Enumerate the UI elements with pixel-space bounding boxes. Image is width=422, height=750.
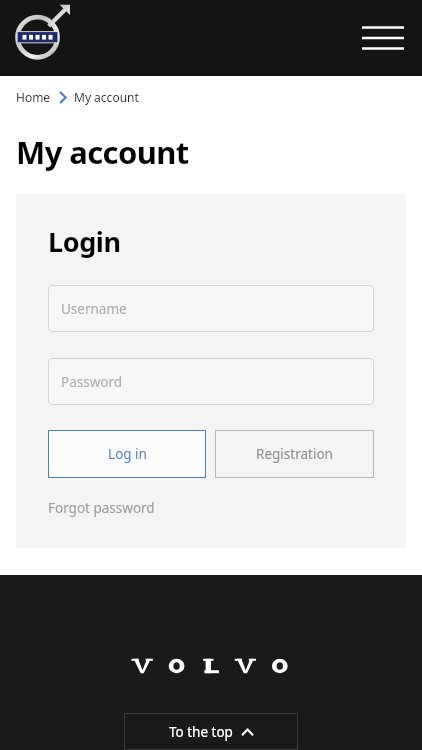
button[interactable]: Volvo home — [14, 7, 70, 63]
button[interactable]: Forgot password — [48, 499, 155, 517]
staticText: Registration — [256, 445, 333, 463]
staticText: Password — [61, 373, 123, 391]
button[interactable]: To the top — [124, 713, 298, 750]
staticText: To the top — [169, 723, 233, 741]
button[interactable]: Registration — [215, 430, 374, 478]
button[interactable]: Password — [48, 358, 374, 405]
staticText: Username — [61, 300, 127, 318]
staticText: My account — [16, 131, 189, 173]
button[interactable]: Home — [16, 89, 51, 105]
staticText: My account — [74, 89, 139, 105]
button[interactable]: Username — [48, 285, 374, 332]
button[interactable]: Menu — [357, 16, 409, 60]
button[interactable]: Log in — [48, 430, 206, 478]
staticText: Login — [48, 223, 121, 260]
staticText: Log in — [108, 445, 147, 463]
